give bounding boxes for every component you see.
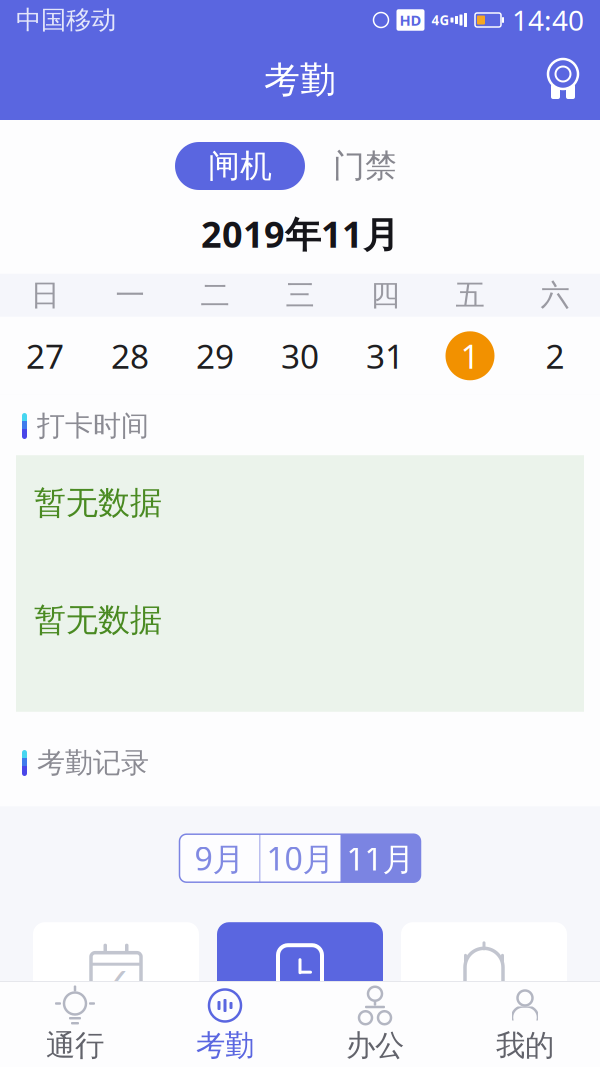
button[interactable]: 勋章 bbox=[544, 51, 600, 109]
staticText: 10月 bbox=[266, 837, 334, 879]
staticText: 27 bbox=[26, 334, 64, 378]
staticText: 办公 bbox=[346, 1027, 404, 1063]
button[interactable]: 29 bbox=[172, 325, 257, 387]
staticText: 二 bbox=[200, 277, 229, 313]
button[interactable]: 30 bbox=[257, 325, 342, 387]
staticText: 28 bbox=[111, 334, 149, 378]
staticText: 异常统计 bbox=[430, 1011, 538, 1044]
staticText: 我的 bbox=[496, 1027, 554, 1063]
button[interactable]: 通行 bbox=[0, 982, 150, 1067]
staticText: 11月 bbox=[346, 837, 414, 879]
button[interactable]: 27 bbox=[2, 325, 87, 387]
staticText: 2019年11月 bbox=[201, 210, 399, 258]
button[interactable]: 9月 bbox=[179, 834, 259, 882]
staticText: 六 bbox=[540, 277, 569, 313]
staticText: ✓ bbox=[100, 960, 131, 1003]
staticText: 中国移动 bbox=[16, 4, 116, 35]
staticText: 9月 bbox=[194, 837, 244, 879]
staticText: 29 bbox=[196, 334, 234, 378]
staticText: 31 bbox=[366, 334, 404, 378]
button[interactable]: 考勤 bbox=[150, 982, 300, 1067]
staticText: 闸机 bbox=[208, 146, 272, 186]
button[interactable]: 打卡统计 bbox=[217, 922, 383, 1057]
staticText: 四 bbox=[370, 277, 399, 313]
staticText: 考勤记录 bbox=[37, 746, 149, 780]
staticText: 一 bbox=[115, 277, 144, 313]
staticText: 14:40 bbox=[512, 1, 584, 39]
button[interactable]: 我的 bbox=[450, 982, 600, 1067]
staticText: 打卡时间 bbox=[37, 409, 149, 443]
staticText: 门禁 bbox=[333, 146, 397, 186]
staticText: 暂无数据 bbox=[34, 600, 162, 640]
button[interactable]: 办公 bbox=[300, 982, 450, 1067]
staticText: 暂无数据 bbox=[34, 483, 162, 522]
staticText: 日 bbox=[30, 277, 59, 313]
staticText: 考勤 bbox=[196, 1027, 254, 1063]
button[interactable]: ✓ bbox=[33, 922, 199, 1057]
button[interactable]: 28 bbox=[87, 325, 172, 387]
button[interactable]: 1 bbox=[427, 325, 512, 387]
button[interactable]: 31 bbox=[342, 325, 427, 387]
staticText: 三 bbox=[285, 277, 314, 313]
staticText: 通行 bbox=[46, 1027, 104, 1063]
staticText: 4G bbox=[431, 11, 449, 29]
button[interactable]: 异常统计 bbox=[401, 922, 567, 1057]
button[interactable]: 闸机 bbox=[175, 142, 305, 190]
staticText: 1 bbox=[460, 334, 479, 378]
button[interactable]: 门禁 bbox=[305, 142, 425, 190]
staticText: HD bbox=[399, 10, 421, 30]
staticText: 2 bbox=[545, 334, 564, 378]
button[interactable]: 11月 bbox=[340, 834, 420, 882]
staticText: 五 bbox=[455, 277, 484, 313]
button[interactable]: 10月 bbox=[260, 834, 340, 882]
staticText: 考勤统计 bbox=[62, 1006, 170, 1039]
staticText: 打卡统计 bbox=[246, 1006, 354, 1039]
staticText: 30 bbox=[281, 334, 319, 378]
button[interactable]: 2 bbox=[512, 325, 597, 387]
staticText: 考勤 bbox=[264, 58, 336, 102]
